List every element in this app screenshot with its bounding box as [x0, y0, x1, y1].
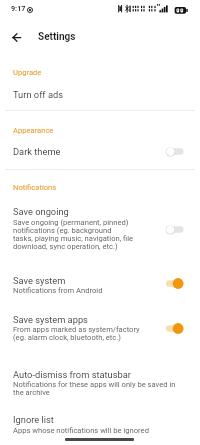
- staticText: Apps whose notifications will be ignored: [13, 426, 149, 435]
- button[interactable]: Save system apps: [0, 305, 200, 347]
- button[interactable]: Turn off ads: [0, 82, 200, 104]
- staticText: Ignore list: [13, 414, 54, 425]
- button[interactable]: Save ongoing: [0, 200, 200, 258]
- button[interactable]: Auto-dismiss from statusbar: [0, 361, 200, 400]
- staticText: Auto-dismiss from statusbar: [13, 369, 131, 380]
- staticText: Turn off ads: [13, 89, 64, 100]
- staticText: Save system: [13, 275, 66, 286]
- button[interactable]: Back: [2, 23, 30, 51]
- button[interactable]: Dark theme: [0, 139, 200, 161]
- staticText: Save system apps: [13, 314, 88, 325]
- staticText: Settings: [38, 31, 76, 43]
- button[interactable]: Save system: [0, 266, 200, 300]
- staticText: From apps marked as system/factory (eg. …: [13, 325, 140, 342]
- button[interactable]: Ignore list: [0, 407, 200, 437]
- button[interactable]: On: [165, 322, 184, 335]
- staticText: 9:17: [11, 4, 26, 12]
- button[interactable]: Off: [165, 145, 184, 158]
- staticText: Upgrade: [13, 68, 42, 77]
- staticText: Appearance: [13, 126, 54, 135]
- staticText: Notifications from Android: [13, 286, 103, 295]
- staticText: Notifications for these apps will only b…: [13, 380, 176, 397]
- staticText: Dark theme: [13, 146, 61, 157]
- staticText: Notifications: [13, 183, 57, 192]
- staticText: Save ongoing: [13, 206, 69, 217]
- button[interactable]: Off: [165, 223, 184, 236]
- staticText: Save ongoing (permanent, pinned) notific…: [13, 218, 134, 251]
- button[interactable]: On: [165, 277, 184, 290]
